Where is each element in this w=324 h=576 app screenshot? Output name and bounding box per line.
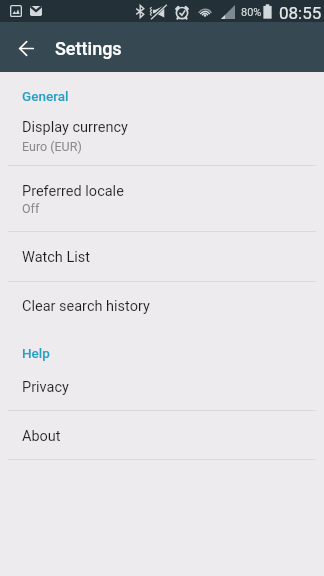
button[interactable]: Clear search history xyxy=(0,281,324,331)
button[interactable]: Back xyxy=(2,23,50,71)
staticText: Clear search history xyxy=(22,298,150,315)
staticText: Watch List xyxy=(22,249,90,266)
staticText: Settings xyxy=(55,38,122,59)
button[interactable]: Watch List xyxy=(0,231,324,281)
staticText: Display currency xyxy=(22,119,128,136)
button[interactable]: Privacy xyxy=(0,365,324,410)
staticText: 80% xyxy=(241,6,262,19)
staticText: Privacy xyxy=(22,379,69,396)
staticText: 08:55 xyxy=(279,3,322,23)
staticText: Help xyxy=(22,345,50,361)
staticText: Off xyxy=(22,201,40,216)
staticText: About xyxy=(22,428,61,445)
button[interactable]: About xyxy=(0,410,324,459)
staticText: Euro (EUR) xyxy=(22,139,82,154)
staticText: General xyxy=(22,88,69,104)
button[interactable]: Display currency xyxy=(0,108,324,165)
button[interactable]: Preferred locale xyxy=(0,165,324,231)
staticText: Preferred locale xyxy=(22,183,124,200)
